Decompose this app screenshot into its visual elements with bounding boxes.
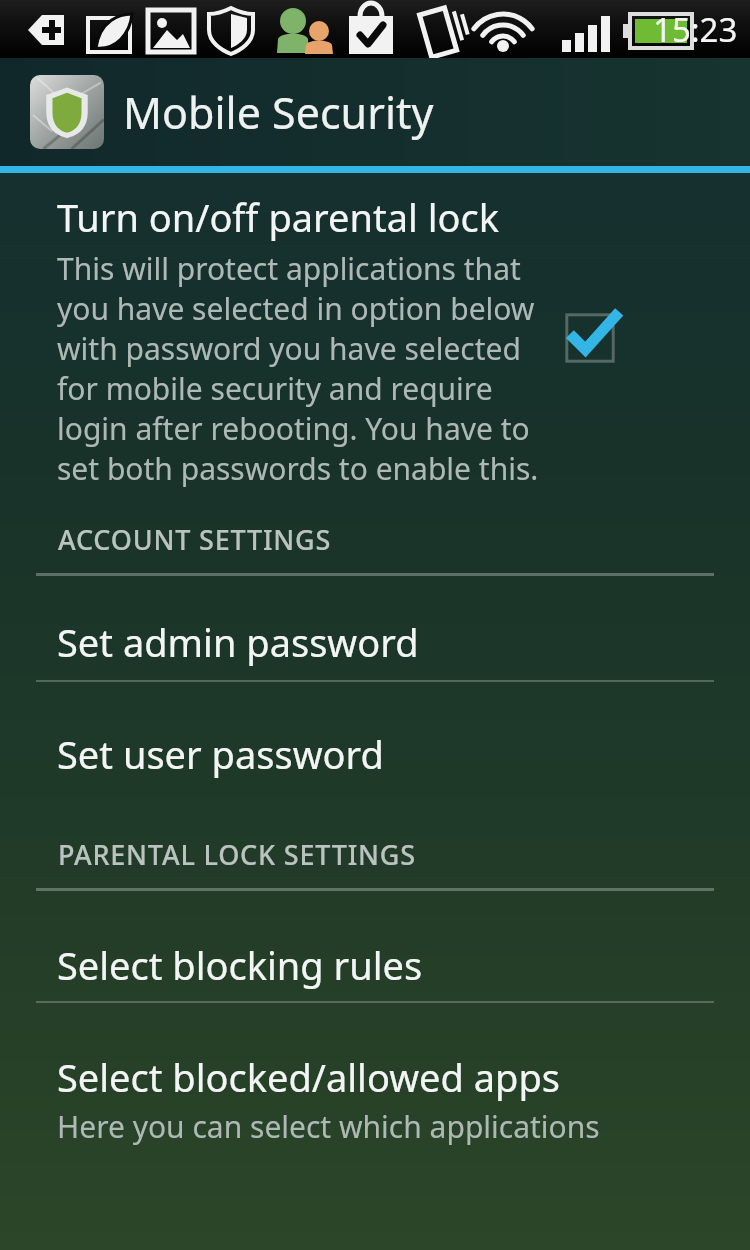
button[interactable]: Set admin password (0, 576, 750, 680)
button[interactable]: Mobile Security (0, 58, 750, 166)
staticText: Here you can select which applications (57, 1106, 600, 1147)
staticText: Select blocked/allowed apps (57, 1051, 560, 1103)
staticText: Set admin password (57, 616, 419, 668)
staticText: Select blocking rules (57, 939, 423, 991)
staticText: Turn on/off parental lock (57, 191, 499, 243)
staticText: Set user password (57, 728, 384, 780)
staticText: Mobile Security (123, 83, 434, 142)
button[interactable]: Parental lock enabled checkbox (561, 309, 619, 367)
staticText: PARENTAL LOCK SETTINGS (58, 836, 416, 873)
button[interactable]: Select blocking rules (0, 891, 750, 1001)
button[interactable]: Turn on/off parental lock (0, 177, 750, 497)
button[interactable]: Select blocked/allowed apps (0, 1003, 750, 1147)
staticText: ACCOUNT SETTINGS (58, 521, 332, 558)
staticText: 15:23 (653, 7, 738, 52)
button[interactable]: Set user password (0, 682, 750, 788)
staticText: This will protect applications that you … (57, 248, 555, 489)
